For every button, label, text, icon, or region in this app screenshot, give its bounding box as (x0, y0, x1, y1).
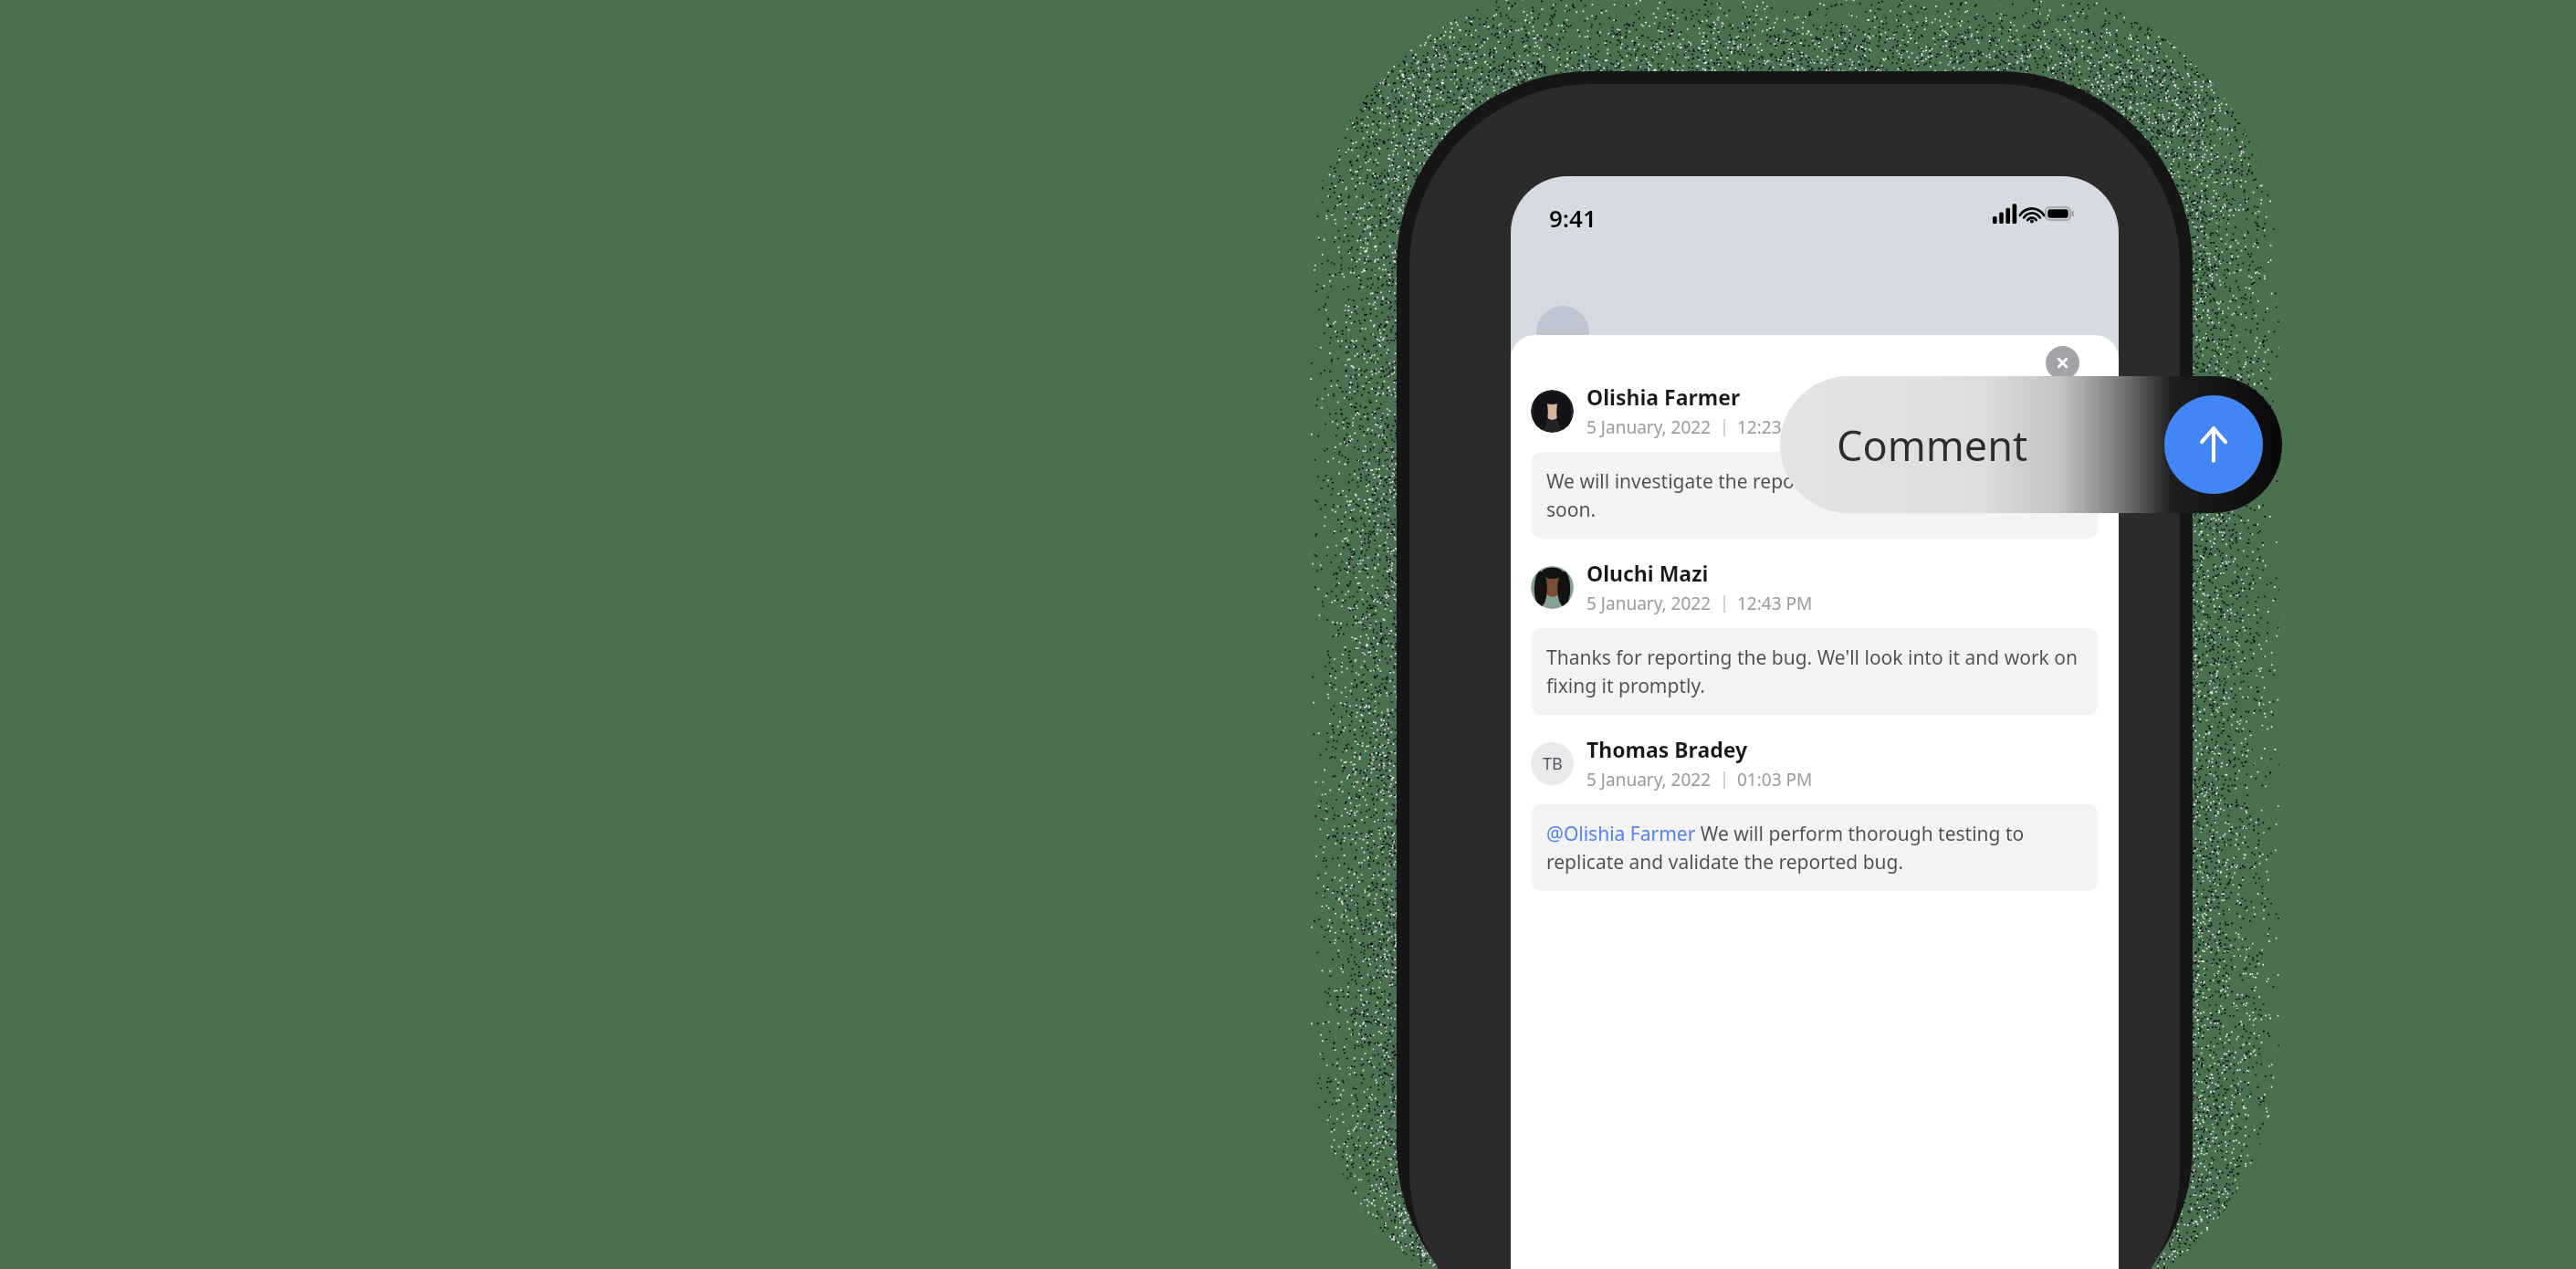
staticText: Comment (1837, 417, 2028, 473)
button[interactable]: Olishia Farmer (1531, 383, 2099, 559)
staticText: TB (1543, 752, 1563, 775)
button[interactable]: Send comment (2164, 395, 2263, 494)
staticText: @Olishia Farmer We will perform thorough… (1546, 821, 2083, 875)
button[interactable]: Comment (1780, 376, 2282, 513)
button[interactable]: Oluchi Mazi (1531, 559, 2099, 735)
staticText: 12:43 PM (1737, 592, 1813, 615)
staticText: 5 January, 2022 (1586, 768, 1712, 792)
staticText: We will investigate the reported bug and… (1546, 468, 2083, 522)
staticText: 12:23 PM (1737, 415, 1813, 439)
button[interactable]: TB (1531, 735, 2099, 911)
button[interactable]: Close (2046, 346, 2079, 380)
staticText: Thanks for reporting the bug. We'll look… (1546, 645, 2083, 698)
staticText: 5 January, 2022 (1586, 592, 1712, 615)
staticText: Olishia Farmer (1586, 383, 1741, 411)
staticText: 01:03 PM (1737, 768, 1813, 792)
staticText: Oluchi Mazi (1586, 559, 1709, 587)
staticText: 9:41 (1549, 202, 1597, 234)
staticText: Thomas Bradey (1586, 735, 1748, 763)
staticText: 5 January, 2022 (1586, 415, 1712, 439)
